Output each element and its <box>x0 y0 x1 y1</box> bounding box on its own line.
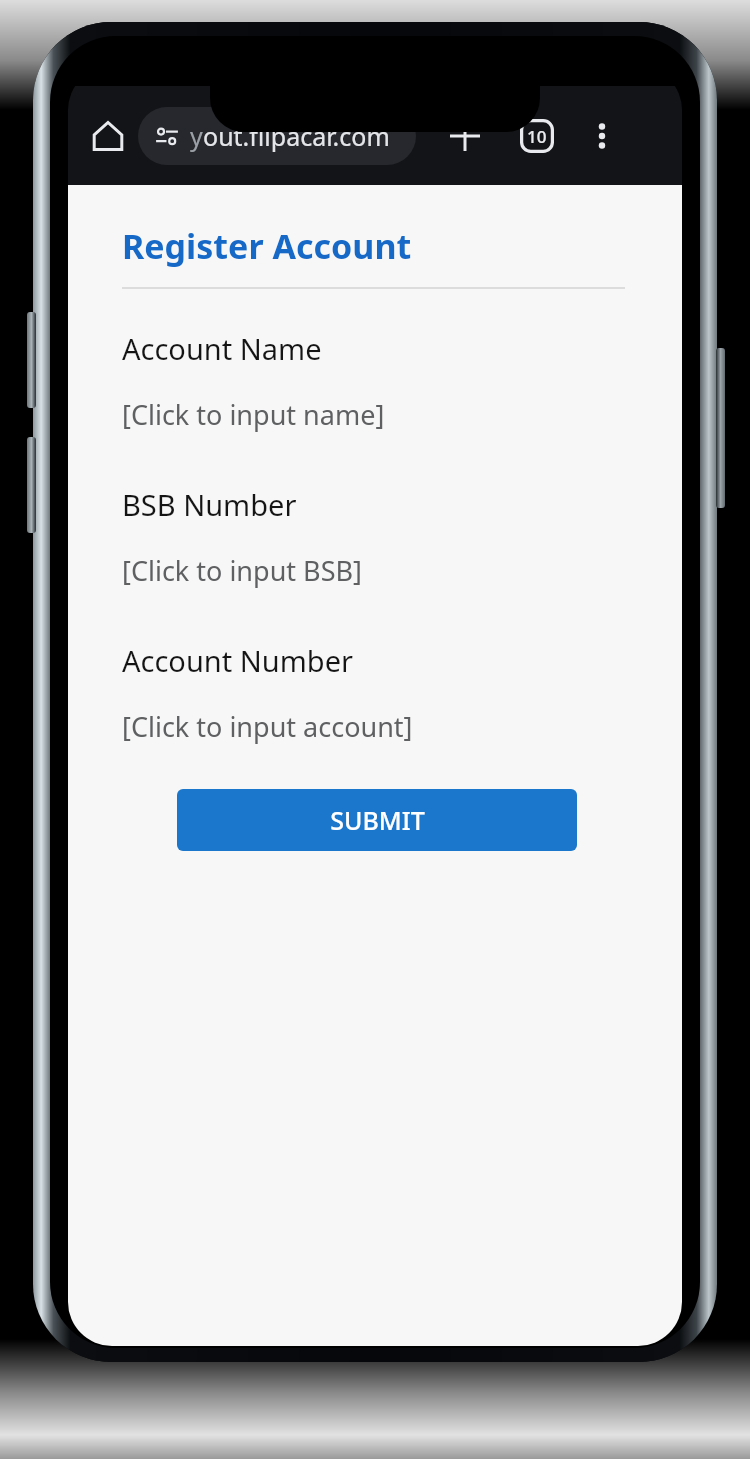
staticText: [Click to input name] <box>122 396 385 433</box>
staticText: SUBMIT <box>330 803 425 837</box>
staticText: 10 <box>527 125 547 148</box>
button[interactable]: SUBMIT <box>177 789 577 851</box>
staticText: out.flipacar.com <box>203 119 390 153</box>
staticText: Account Number <box>122 641 354 680</box>
button[interactable]: [Click to input account] <box>68 708 682 745</box>
staticText: [Click to input BSB] <box>122 552 362 589</box>
staticText: [Click to input account] <box>122 708 413 745</box>
button[interactable]: Home <box>82 110 134 162</box>
button[interactable]: More options <box>576 110 628 162</box>
button[interactable]: y <box>138 107 416 165</box>
staticText: BSB Number <box>122 485 297 524</box>
button[interactable]: New tab <box>438 109 492 163</box>
button[interactable]: Tabs, 10 open <box>510 109 564 163</box>
button[interactable]: [Click to input BSB] <box>68 552 682 589</box>
button[interactable]: [Click to input name] <box>68 396 682 433</box>
staticText: Account Name <box>122 329 322 368</box>
staticText: y <box>190 119 203 153</box>
staticText: Register Account <box>122 223 412 269</box>
